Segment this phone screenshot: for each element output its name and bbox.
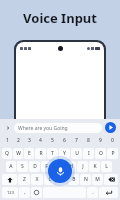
staticText: Voice Input <box>23 9 97 27</box>
button[interactable]: Send <box>105 122 116 133</box>
button[interactable]: V <box>56 174 67 185</box>
button[interactable]: G <box>53 161 64 172</box>
staticText: G <box>57 163 61 170</box>
staticText: N <box>84 176 88 183</box>
button[interactable]: , <box>19 187 30 198</box>
staticText: Y <box>63 150 66 157</box>
button[interactable]: Shift <box>2 174 17 185</box>
button[interactable]: A <box>6 161 16 172</box>
staticText: 5 <box>51 137 54 144</box>
button[interactable]: Y <box>59 148 70 159</box>
button[interactable]: O <box>95 148 106 159</box>
staticText: U <box>75 150 79 157</box>
button[interactable]: E <box>24 148 34 159</box>
staticText: W <box>16 150 21 157</box>
button[interactable]: 6 <box>59 135 70 146</box>
button[interactable]: Q <box>2 148 12 159</box>
staticText: P <box>111 150 115 157</box>
button[interactable]: K <box>89 161 100 172</box>
button[interactable]: R <box>35 148 46 159</box>
staticText: C <box>48 176 52 183</box>
button[interactable]: Z <box>18 174 30 185</box>
staticText: A <box>9 163 13 170</box>
button[interactable]: Expand suggestions <box>4 124 12 132</box>
staticText: L <box>105 163 108 170</box>
staticText: H <box>69 163 73 170</box>
button[interactable]: I <box>83 148 94 159</box>
staticText: K <box>93 163 97 170</box>
button[interactable]: X <box>31 174 43 185</box>
staticText: S <box>21 163 24 170</box>
button[interactable]: 9 <box>95 135 106 146</box>
staticText: 6 <box>63 137 66 144</box>
button[interactable]: 8 <box>83 135 94 146</box>
staticText: 123 <box>7 190 14 195</box>
button[interactable]: S <box>17 161 28 172</box>
staticText: X <box>35 176 39 183</box>
staticText: 8 <box>87 137 90 144</box>
button[interactable]: Enter <box>99 187 118 198</box>
staticText: 9 <box>99 137 102 144</box>
button[interactable]: D <box>29 161 40 172</box>
button[interactable]: N <box>80 174 91 185</box>
staticText: E <box>28 150 31 157</box>
button[interactable]: W <box>13 148 23 159</box>
button[interactable]: H <box>65 161 76 172</box>
staticText: R <box>39 150 43 157</box>
staticText: Where are you Going <box>18 125 68 132</box>
staticText: V <box>60 176 64 183</box>
staticText: 0 <box>111 137 114 144</box>
staticText: 3 <box>28 137 31 144</box>
button[interactable]: . <box>87 187 98 198</box>
button[interactable]: Emoji <box>31 187 42 198</box>
staticText: 1 <box>6 137 9 144</box>
button[interactable]: 123 <box>2 187 18 198</box>
button[interactable]: J <box>77 161 88 172</box>
staticText: F <box>45 163 48 170</box>
button[interactable]: 7 <box>71 135 82 146</box>
staticText: I <box>88 150 90 157</box>
staticText: B <box>72 176 76 183</box>
button[interactable]: T <box>47 148 58 159</box>
button[interactable]: L <box>101 161 112 172</box>
button[interactable]: 1 <box>2 135 12 146</box>
staticText: 2 <box>17 137 20 144</box>
button[interactable]: 4 <box>35 135 46 146</box>
button[interactable]: Where are you Going <box>18 123 98 133</box>
button[interactable]: U <box>71 148 82 159</box>
staticText: J <box>82 163 84 170</box>
button[interactable]: 3 <box>24 135 34 146</box>
button[interactable]: P <box>107 148 118 159</box>
button[interactable]: 5 <box>47 135 58 146</box>
staticText: D <box>33 163 37 170</box>
button[interactable]: B <box>68 174 79 185</box>
staticText: , <box>24 189 26 196</box>
staticText: . <box>92 189 94 196</box>
staticText: M <box>95 176 100 183</box>
staticText: Q <box>5 150 9 157</box>
staticText: Z <box>23 176 26 183</box>
staticText: T <box>51 150 54 157</box>
button[interactable]: 2 <box>13 135 23 146</box>
button[interactable]: 0 <box>107 135 118 146</box>
button[interactable]: Start voice input <box>48 159 72 183</box>
button[interactable]: C <box>44 174 55 185</box>
button[interactable]: M <box>92 174 103 185</box>
staticText: 4 <box>39 137 42 144</box>
button[interactable]: F <box>41 161 52 172</box>
staticText: O <box>99 150 103 157</box>
button[interactable]: Backspace <box>104 174 118 185</box>
staticText: 7 <box>75 137 78 144</box>
